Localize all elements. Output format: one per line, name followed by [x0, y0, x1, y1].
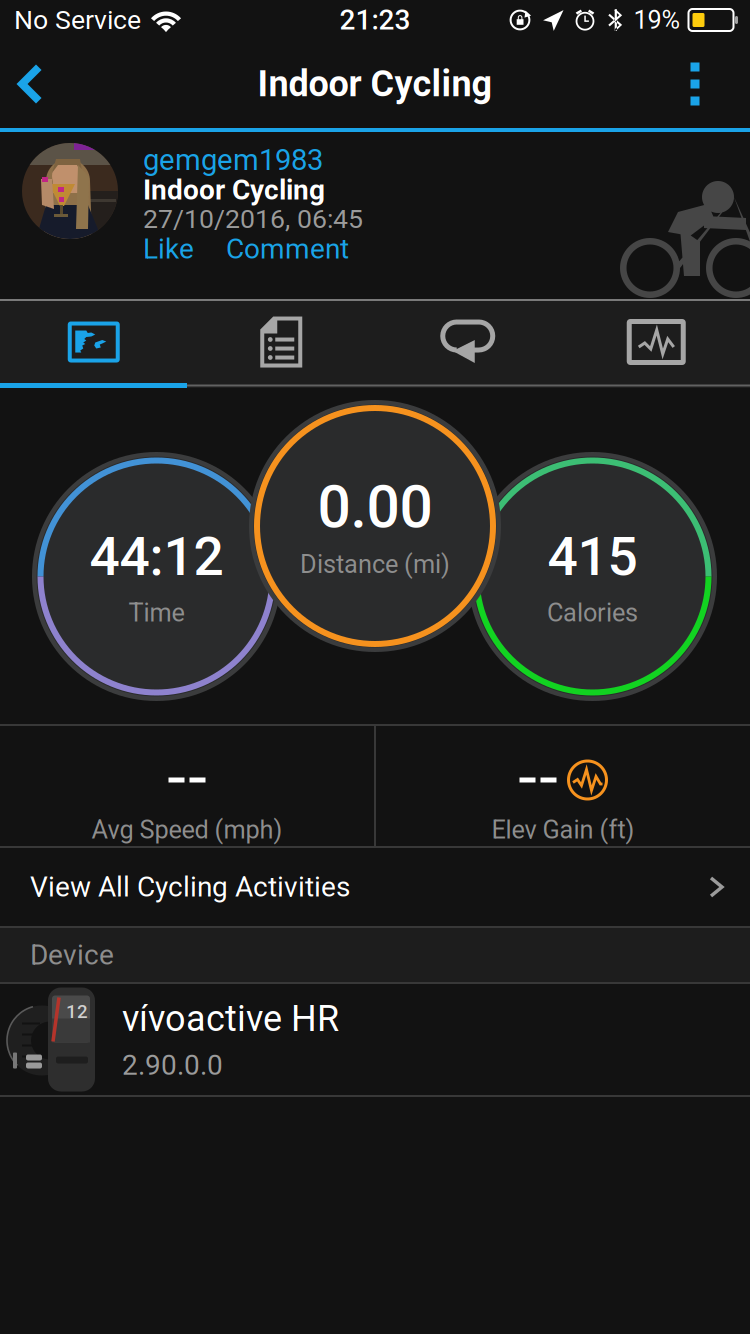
button[interactable]: Laps — [375, 301, 562, 383]
button[interactable]: 12 — [0, 984, 750, 1095]
staticText: Avg Speed (mph) — [91, 815, 282, 845]
staticText: Comment — [226, 233, 349, 265]
staticText: Calories — [547, 598, 638, 628]
staticText: Indoor Cycling — [143, 174, 325, 206]
staticText: View All Cycling Activities — [30, 871, 350, 903]
staticText: Time — [128, 598, 184, 628]
staticText: 44:12 — [89, 525, 223, 588]
button[interactable]: Details — [187, 301, 375, 383]
staticText: 0.00 — [317, 473, 432, 542]
staticText: gemgem1983 — [143, 143, 323, 177]
button[interactable]: Charts — [562, 301, 750, 383]
staticText: Device — [30, 939, 114, 971]
staticText: Elev Gain (ft) — [491, 815, 634, 845]
button[interactable]: gemgem1983 — [143, 145, 323, 175]
staticText: No Service — [14, 4, 141, 36]
staticText: 415 — [547, 525, 637, 588]
staticText: vívoactive HR — [122, 997, 339, 1040]
staticText: Like — [143, 233, 194, 265]
staticText: 21:23 — [339, 4, 410, 36]
button[interactable]: Comment — [226, 233, 352, 265]
staticText: 19% — [633, 5, 680, 35]
button[interactable]: View All Cycling Activities — [0, 848, 750, 926]
button[interactable]: Map — [0, 301, 187, 383]
staticText: 2.90.0.0 — [122, 1049, 223, 1081]
staticText: Indoor Cycling — [257, 63, 492, 105]
staticText: Distance (mi) — [300, 549, 450, 579]
staticText: 12 — [66, 1001, 88, 1022]
staticText: 27/10/2016, 06:45 — [143, 203, 363, 235]
button[interactable]: Back — [0, 40, 76, 128]
button[interactable]: More options — [630, 40, 750, 128]
button[interactable]: Like — [143, 233, 201, 265]
